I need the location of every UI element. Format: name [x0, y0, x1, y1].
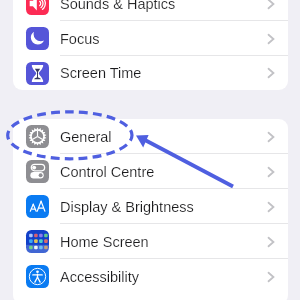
button[interactable]: Focus — [13, 21, 288, 56]
staticText: Control Centre — [60, 164, 155, 180]
staticText: General — [60, 129, 112, 145]
button[interactable]: Home Screen — [13, 224, 288, 259]
staticText: Focus — [60, 31, 100, 47]
staticText: Accessibility — [60, 269, 139, 285]
button[interactable]: Accessibility — [13, 259, 288, 294]
staticText: Sounds & Haptics — [60, 0, 176, 12]
button[interactable]: Sounds & Haptics — [13, 0, 288, 21]
staticText: Home Screen — [60, 234, 149, 250]
button[interactable]: Display & Brightness — [13, 189, 288, 224]
staticText: Display & Brightness — [60, 199, 194, 215]
button[interactable]: General — [13, 119, 288, 154]
button[interactable]: Screen Time — [13, 56, 288, 90]
button[interactable]: Control Centre — [13, 154, 288, 189]
staticText: Screen Time — [60, 65, 142, 81]
